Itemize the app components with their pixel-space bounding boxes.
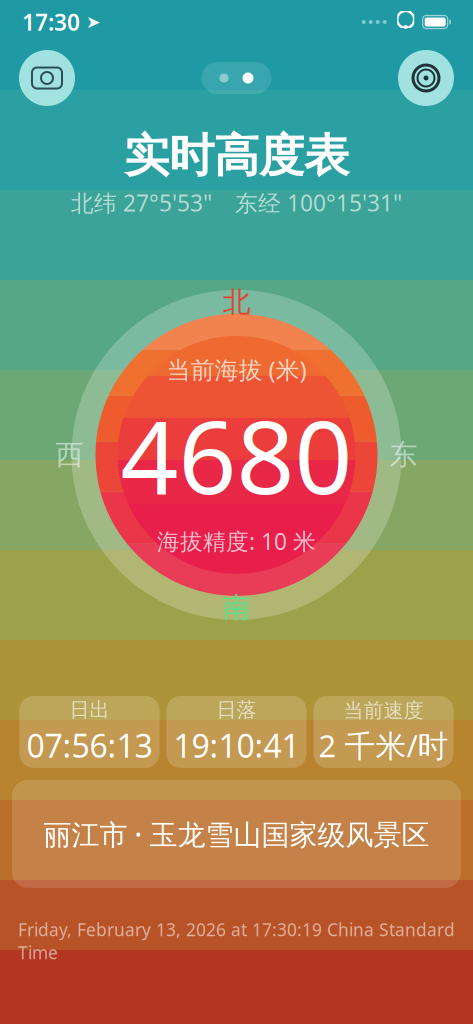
staticText: Friday, February 13, 2026 at 17:30:19 Ch… (18, 918, 455, 964)
button[interactable]: 丽江市 · 玉龙雪山国家级风景区 (12, 780, 461, 888)
staticText: 当前速度 (343, 698, 423, 723)
staticText: 实时高度表 (124, 128, 349, 184)
staticText: 丽江市 · 玉龙雪山国家级风景区 (43, 815, 429, 853)
staticText: 07:56:13 (26, 724, 152, 766)
button[interactable]: Settings (398, 50, 454, 106)
button[interactable]: 日出 (19, 696, 159, 768)
staticText: 南 (222, 590, 250, 625)
staticText: 2 千米/时 (318, 725, 448, 766)
button[interactable]: 当前速度 (313, 696, 453, 768)
staticText: 日出 (69, 697, 109, 722)
button[interactable]: 日落 (166, 696, 306, 768)
button[interactable]: Camera (19, 50, 75, 106)
staticText: 北 (222, 285, 250, 319)
button[interactable]: Page indicator (201, 62, 271, 94)
staticText: 海拔精度: 10 米 (157, 526, 316, 556)
staticText: 北纬 27°5'53" 东经 100°15'31" (71, 188, 402, 218)
staticText: 当前海拔 (米) (166, 354, 306, 385)
staticText: 17:30 (22, 7, 80, 37)
staticText: 西 (55, 438, 83, 472)
staticText: 4680 (120, 387, 352, 522)
staticText: 日落 (216, 697, 256, 722)
staticText: 东 (389, 438, 417, 472)
staticText: 19:10:41 (173, 724, 299, 766)
staticText: ➤ (80, 12, 101, 32)
